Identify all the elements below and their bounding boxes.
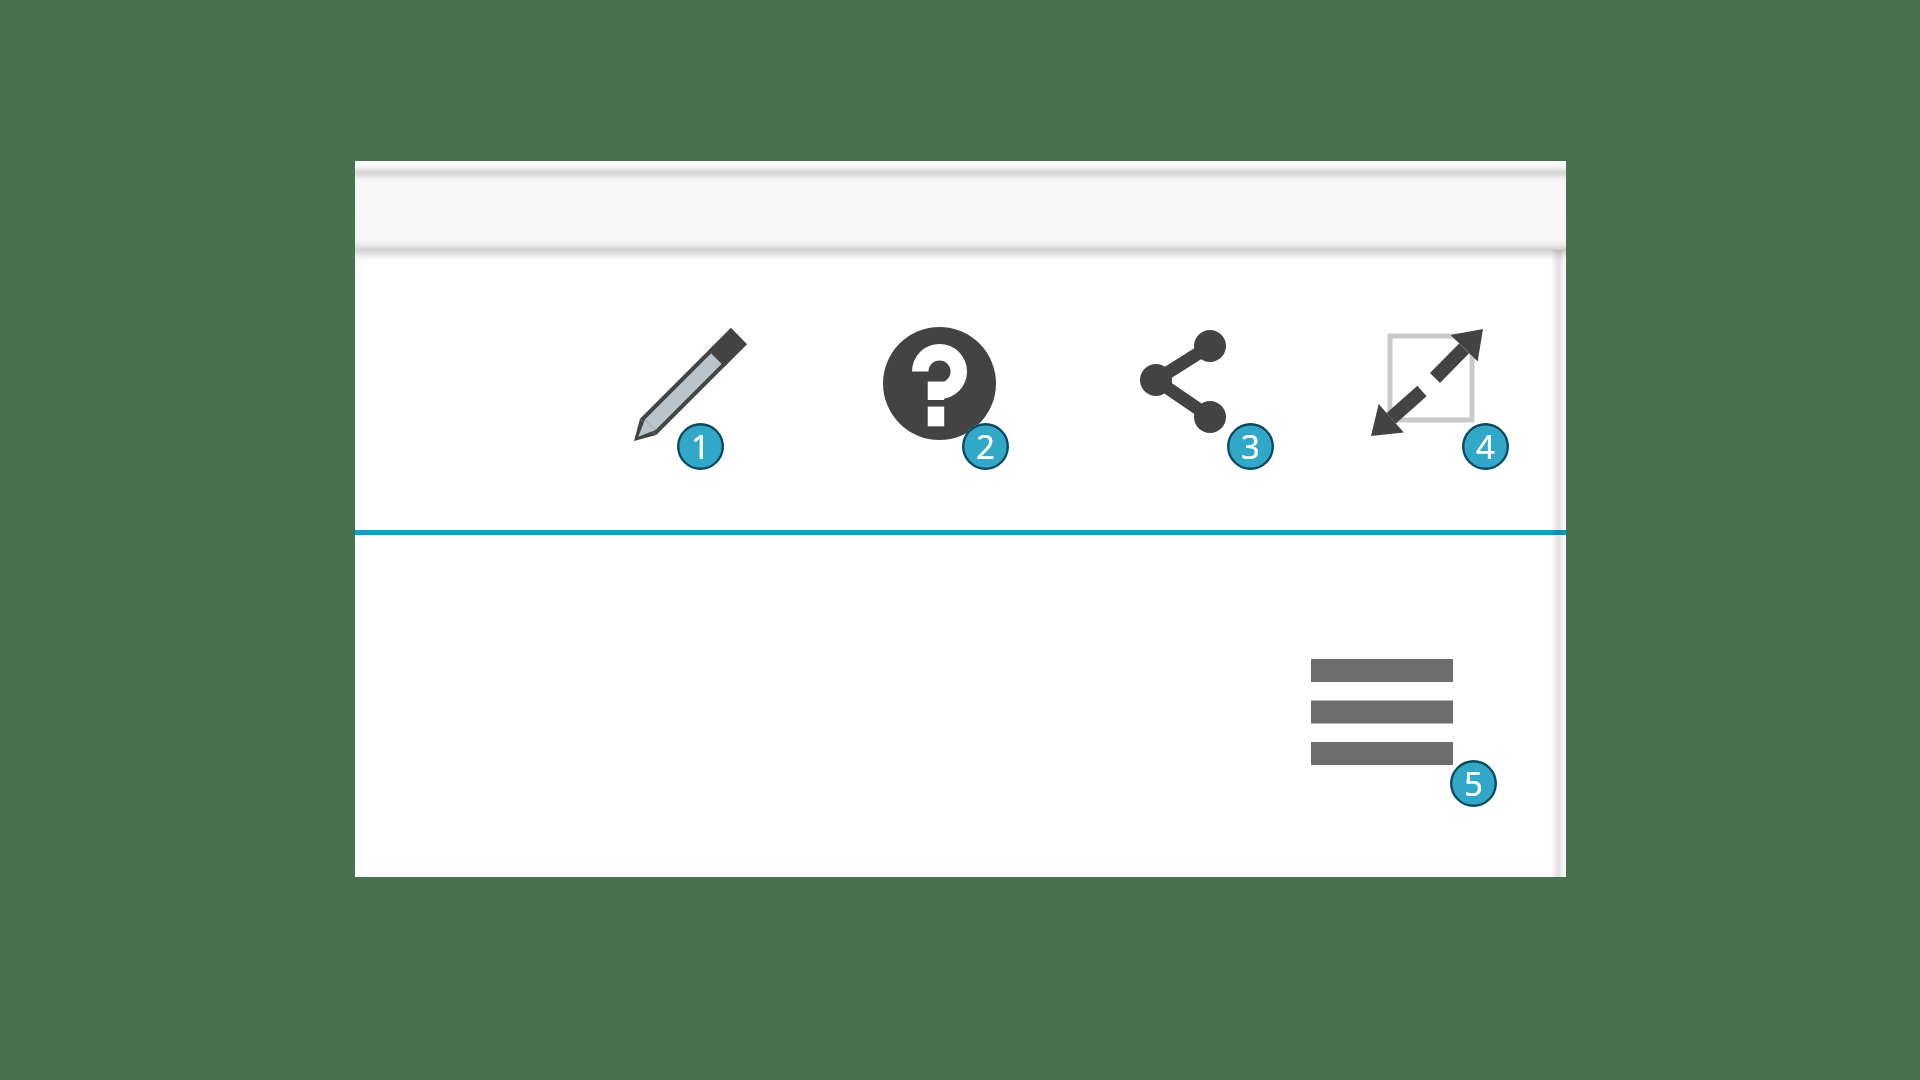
button[interactable]: Edit bbox=[625, 327, 748, 450]
button[interactable]: Step 1 bbox=[677, 423, 724, 470]
button[interactable]: Fullscreen bbox=[1369, 327, 1485, 439]
button[interactable]: Step 3 bbox=[1227, 423, 1274, 470]
staticText: 4 bbox=[1476, 424, 1495, 469]
button[interactable]: Step 5 bbox=[1450, 760, 1497, 807]
button[interactable]: Help bbox=[883, 327, 996, 440]
button[interactable]: Menu bbox=[1305, 653, 1459, 772]
staticText: 1 bbox=[691, 424, 710, 469]
button[interactable]: Share bbox=[1140, 330, 1226, 417]
staticText: 2 bbox=[976, 424, 995, 469]
button[interactable]: Step 2 bbox=[962, 423, 1009, 470]
button[interactable]: Step 4 bbox=[1462, 423, 1509, 470]
staticText: 5 bbox=[1464, 761, 1483, 806]
staticText: 3 bbox=[1241, 424, 1260, 469]
